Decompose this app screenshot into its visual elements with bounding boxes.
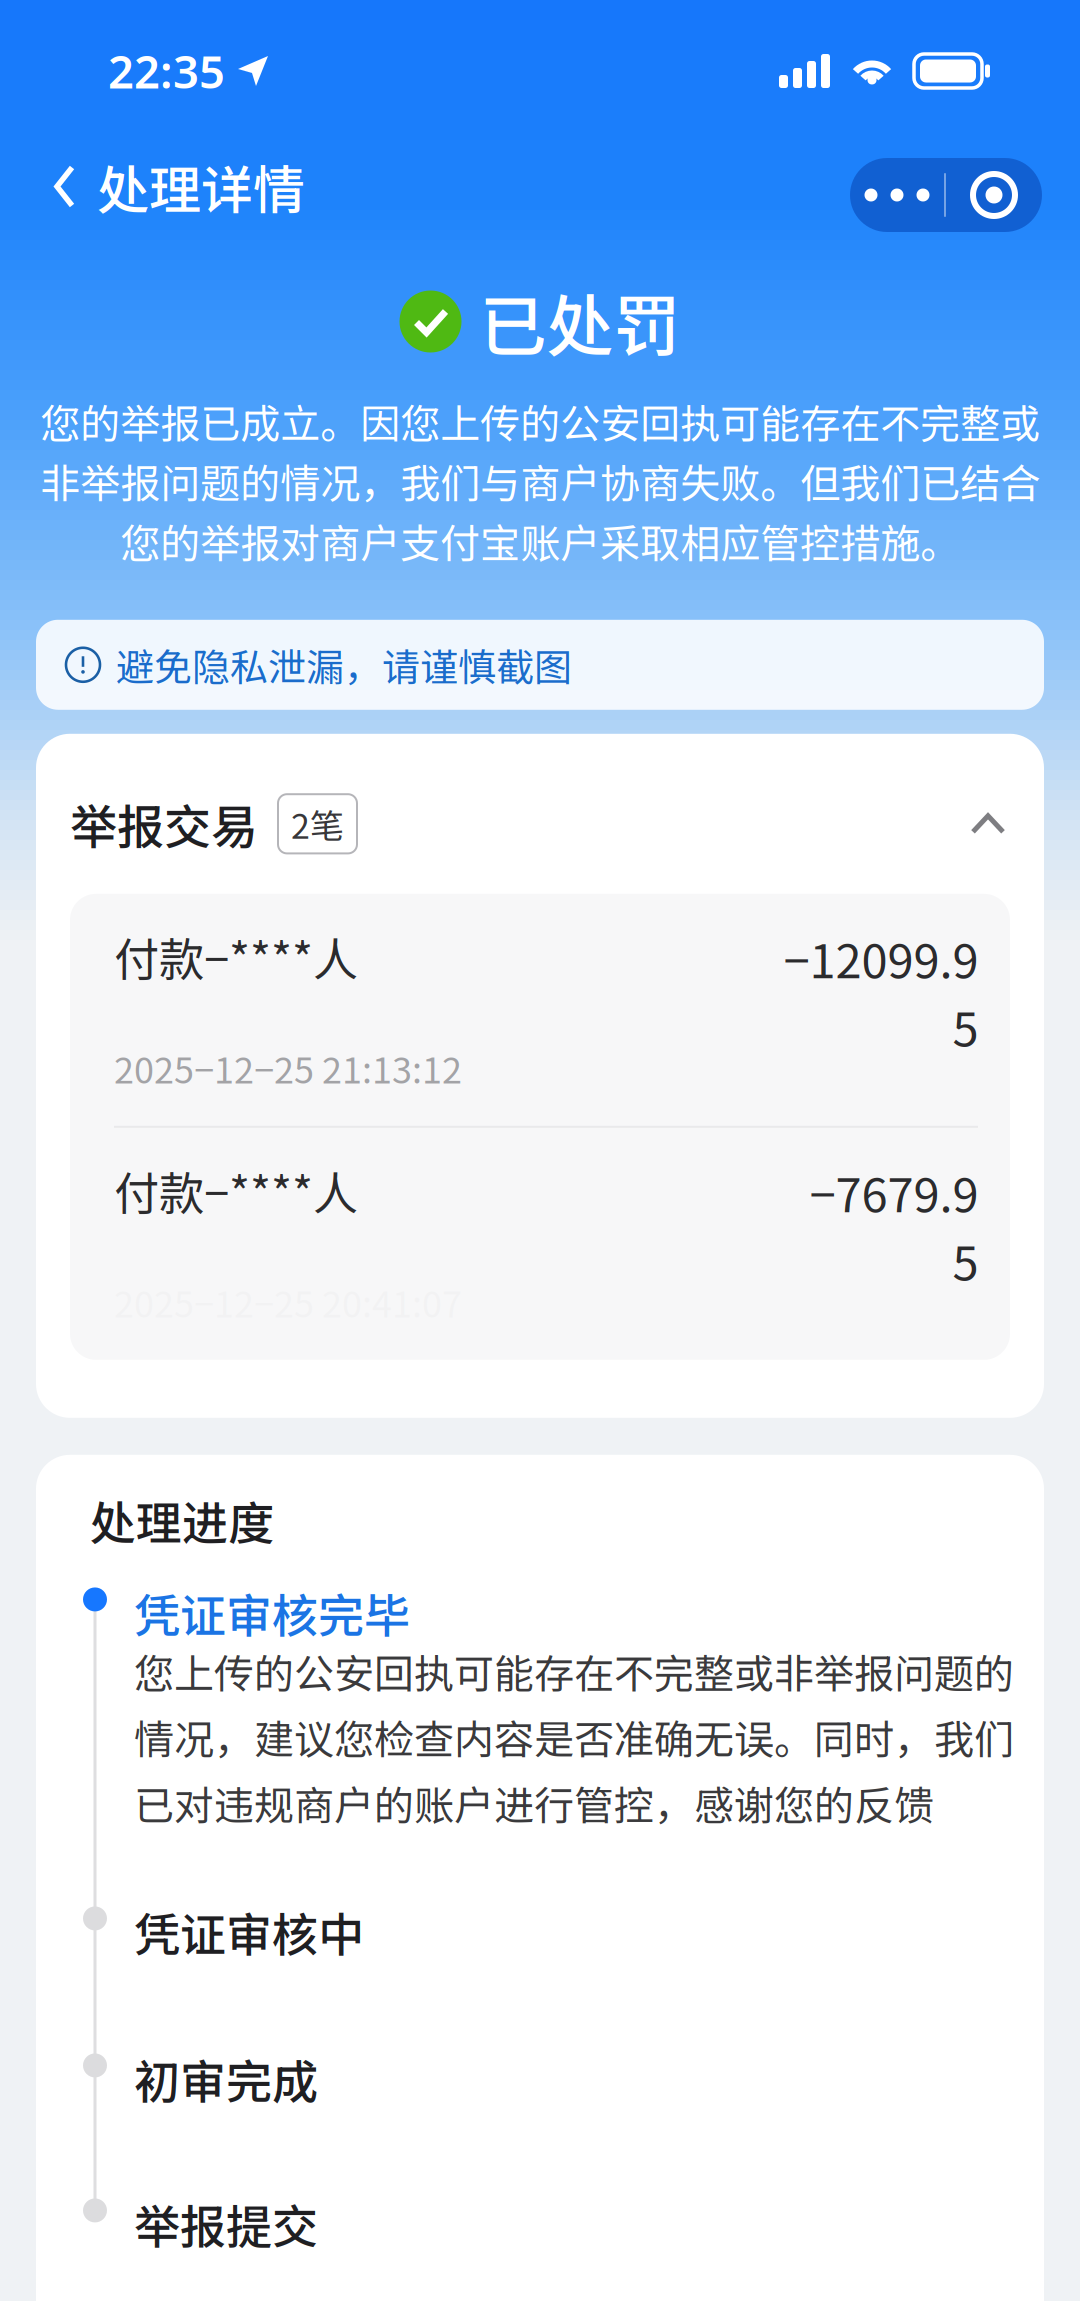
button[interactable]: Close mini program (946, 158, 1042, 232)
staticText: 凭证审核中 (134, 1898, 364, 1965)
staticText: 您的举报已成立。因您上传的公安回执可能存在不完整或非举报问题的情况，我们与商户协… (40, 392, 1040, 570)
staticText: 初审完成 (134, 2045, 318, 2112)
button[interactable]: Collapse transactions (960, 801, 1016, 847)
staticText: 处理详情 (97, 149, 305, 224)
staticText: 您上传的公安回执可能存在不完整或非举报问题的情况，建议您检查内容是否准确无误。同… (134, 1642, 1014, 1832)
staticText: 2笔 (291, 799, 344, 848)
staticText: 避免隐私泄漏，请谨慎截图 (116, 637, 572, 692)
staticText: −7679.9 5 (809, 1158, 978, 1294)
staticText: 举报交易 (70, 790, 258, 858)
staticText: 付款−****人 (114, 924, 358, 989)
staticText: 22:35 (108, 41, 225, 101)
staticText: 2025−12−25 21:13:12 (114, 1042, 462, 1094)
staticText: 付款−****人 (114, 1158, 358, 1223)
staticText: 举报提交 (134, 2190, 318, 2257)
staticText: 处理进度 (90, 1487, 274, 1553)
staticText: −12099.9 5 (783, 924, 978, 1060)
staticText: 已处罚 (479, 273, 680, 370)
staticText: 凭证审核完毕 (134, 1579, 410, 1646)
button[interactable]: 处理详情 (0, 136, 305, 238)
button[interactable]: More (850, 158, 944, 232)
